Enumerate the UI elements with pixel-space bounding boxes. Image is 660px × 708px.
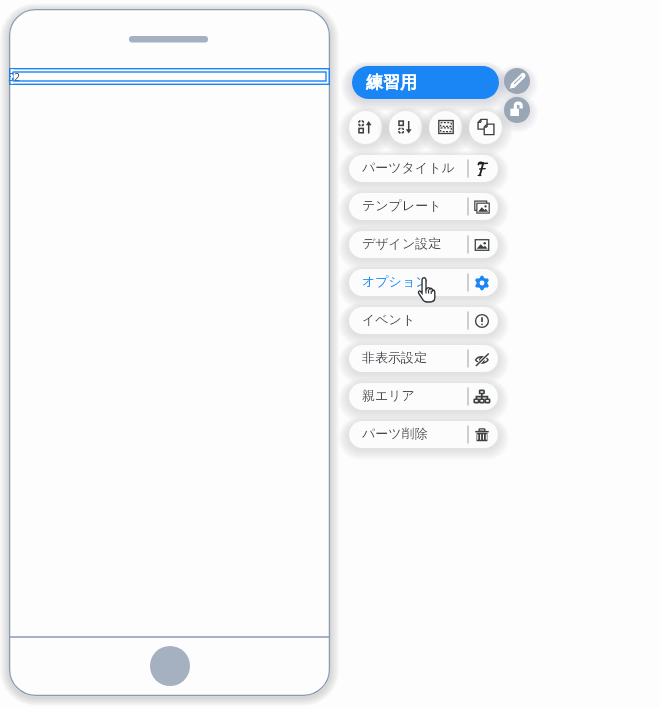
staticText: デザイン設定 [362, 235, 442, 251]
button[interactable]: Edit [504, 68, 530, 94]
button[interactable]: Duplicate [469, 111, 502, 144]
staticText: オプション [362, 273, 429, 289]
button[interactable]: 非表示設定 [349, 345, 498, 372]
staticText: 非表示設定 [362, 349, 427, 365]
button[interactable]: Selected part 52 [9, 68, 330, 85]
button[interactable]: パーツタイトル [349, 155, 498, 182]
staticText: パーツ削除 [362, 425, 428, 441]
button[interactable]: テンプレート [349, 193, 498, 220]
button[interactable]: デザイン設定 [349, 231, 498, 258]
staticText: イベント [362, 311, 416, 327]
button[interactable]: オプション [349, 269, 498, 296]
button[interactable]: 親エリア [349, 383, 498, 410]
button[interactable]: 練習用 [352, 66, 499, 99]
button[interactable]: イベント [349, 307, 498, 334]
staticText: 親エリア [362, 387, 415, 403]
staticText: 練習用 [366, 72, 417, 93]
button[interactable]: パーツ削除 [349, 421, 498, 448]
staticText: 52 [8, 70, 21, 84]
button[interactable]: Unlock [504, 97, 530, 123]
button[interactable]: Move down [389, 111, 422, 144]
staticText: テンプレート [362, 197, 442, 213]
staticText: パーツタイトル [362, 159, 455, 175]
button[interactable]: Move up [349, 111, 382, 144]
button[interactable]: Layout [429, 111, 462, 144]
